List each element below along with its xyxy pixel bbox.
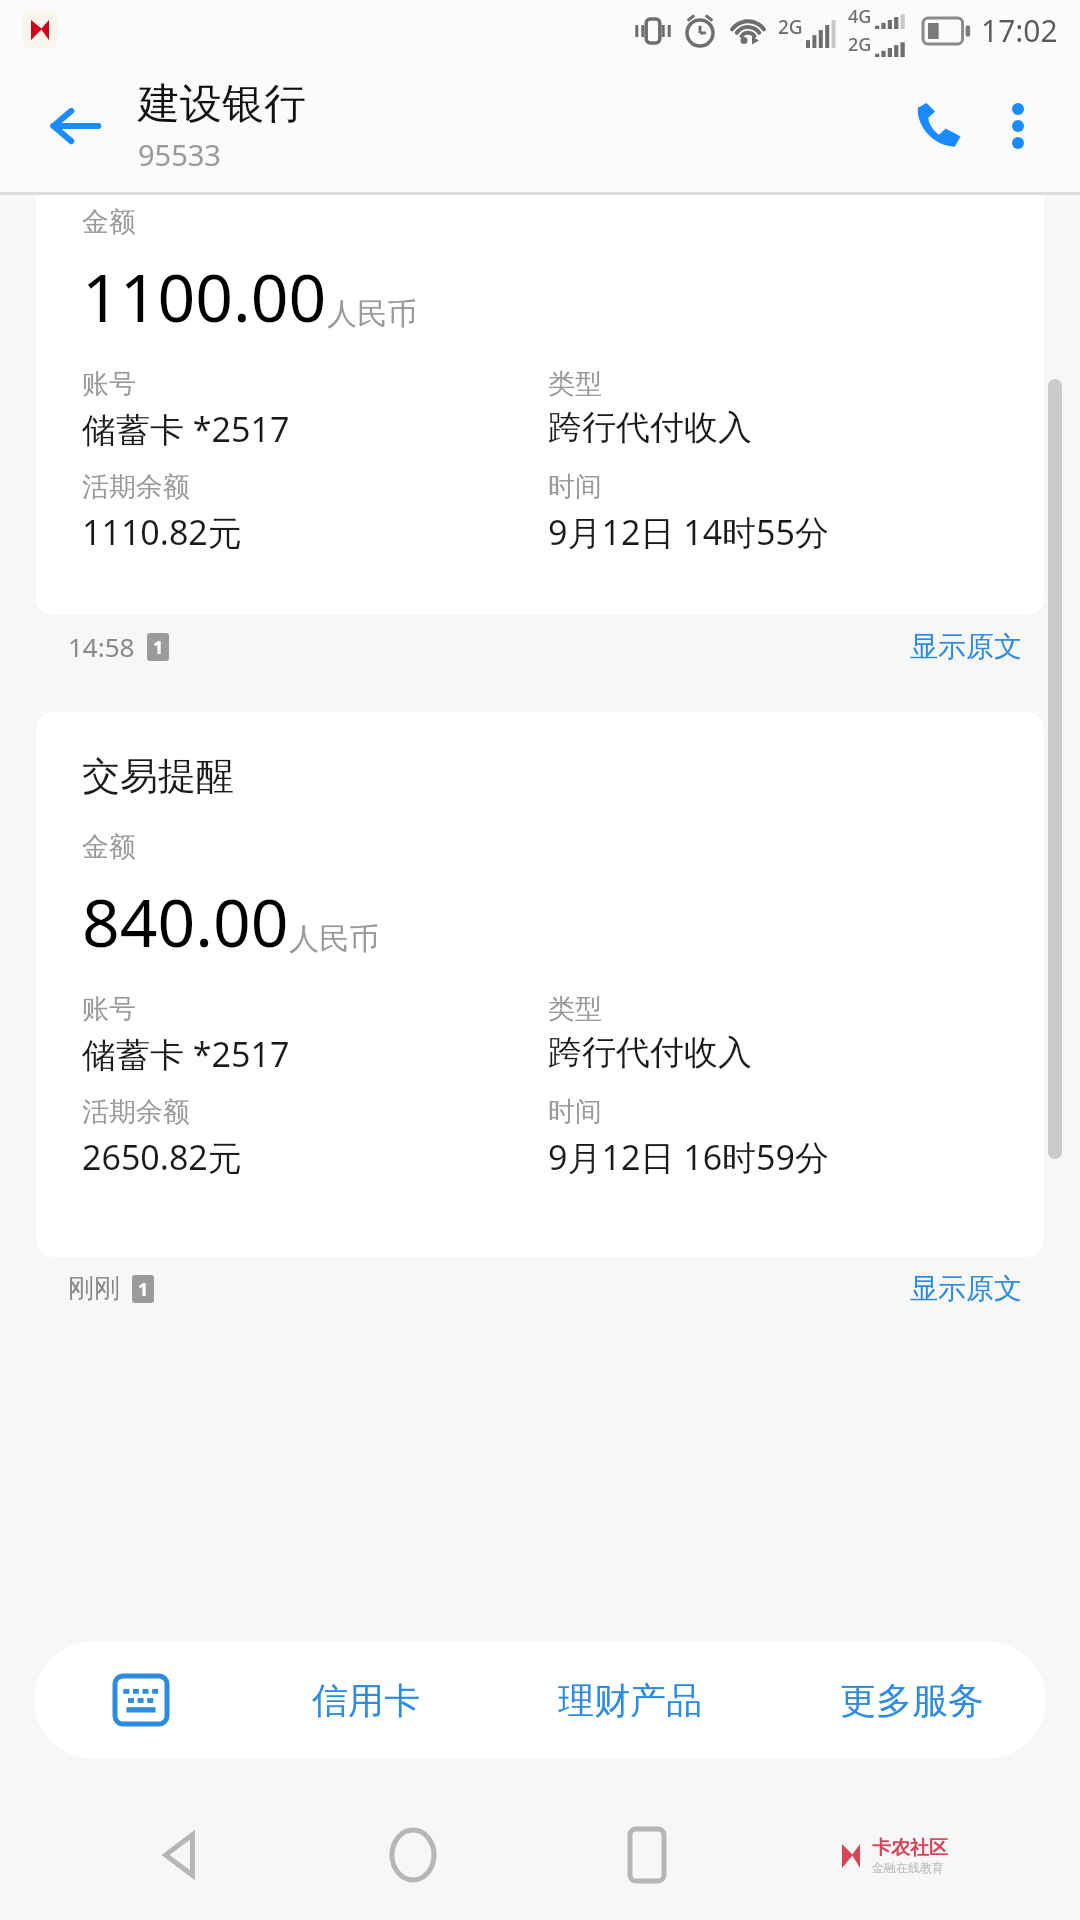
staticText: 1110.82元 bbox=[82, 509, 242, 555]
staticText: 刚刚 bbox=[68, 1272, 120, 1305]
staticText: 活期余额 bbox=[82, 1095, 190, 1129]
staticText: 活期余额 bbox=[82, 470, 190, 504]
staticText: 2G bbox=[778, 14, 803, 40]
staticText: 跨行代付收入 bbox=[548, 406, 752, 449]
button[interactable]: 信用卡 bbox=[306, 1660, 426, 1741]
staticText: 人民币 bbox=[289, 920, 379, 958]
staticText: 9月12日 16时59分 bbox=[548, 1134, 829, 1180]
button[interactable]: 交易提醒 bbox=[36, 712, 1044, 1257]
button[interactable]: Home bbox=[358, 1800, 468, 1910]
button[interactable]: 更多服务 bbox=[834, 1660, 990, 1741]
staticText: 金额 bbox=[82, 205, 136, 239]
staticText: 信用卡 bbox=[312, 1678, 420, 1723]
staticText: 1 bbox=[138, 1277, 149, 1302]
staticText: 17:02 bbox=[981, 10, 1058, 51]
staticText: 14:58 bbox=[68, 629, 135, 664]
button[interactable]: 金额 bbox=[36, 195, 1044, 615]
staticText: 金融在线教育 bbox=[872, 1860, 944, 1875]
staticText: 显示原文 bbox=[910, 1271, 1022, 1306]
staticText: 储蓄卡 *2517 bbox=[82, 1031, 290, 1077]
button[interactable]: Keyboard bbox=[102, 1661, 180, 1739]
button[interactable]: 显示原文 bbox=[910, 1271, 1022, 1306]
staticText: 储蓄卡 *2517 bbox=[82, 406, 290, 452]
staticText: 840.00 bbox=[82, 876, 289, 966]
staticText: 1100.00 bbox=[82, 251, 327, 341]
button[interactable]: More options bbox=[980, 88, 1056, 164]
button[interactable]: Call bbox=[896, 84, 980, 168]
staticText: 理财产品 bbox=[558, 1678, 702, 1723]
staticText: 跨行代付收入 bbox=[548, 1031, 752, 1074]
staticText: 时间 bbox=[548, 1095, 602, 1129]
button[interactable]: Back bbox=[34, 86, 114, 166]
button[interactable]: Recents bbox=[592, 1800, 702, 1910]
staticText: 交易提醒 bbox=[82, 752, 234, 800]
staticText: 类型 bbox=[548, 992, 602, 1026]
staticText: 1 bbox=[153, 635, 164, 660]
staticText: 类型 bbox=[548, 367, 602, 401]
staticText: 显示原文 bbox=[910, 629, 1022, 664]
staticText: 2G bbox=[848, 32, 872, 57]
staticText: 9月12日 14时55分 bbox=[548, 509, 829, 555]
staticText: 2650.82元 bbox=[82, 1134, 242, 1180]
staticText: 建设银行 bbox=[138, 78, 306, 131]
staticText: 账号 bbox=[82, 367, 136, 401]
staticText: 卡农社区 bbox=[872, 1836, 948, 1860]
button[interactable]: 理财产品 bbox=[552, 1660, 708, 1741]
staticText: 时间 bbox=[548, 470, 602, 504]
staticText: 4G bbox=[848, 4, 872, 29]
staticText: 账号 bbox=[82, 992, 136, 1026]
staticText: 金额 bbox=[82, 830, 136, 864]
staticText: 95533 bbox=[138, 135, 221, 174]
button[interactable]: Back bbox=[124, 1800, 234, 1910]
staticText: 更多服务 bbox=[840, 1678, 984, 1723]
staticText: 人民币 bbox=[327, 295, 417, 333]
button[interactable]: 显示原文 bbox=[910, 629, 1022, 664]
